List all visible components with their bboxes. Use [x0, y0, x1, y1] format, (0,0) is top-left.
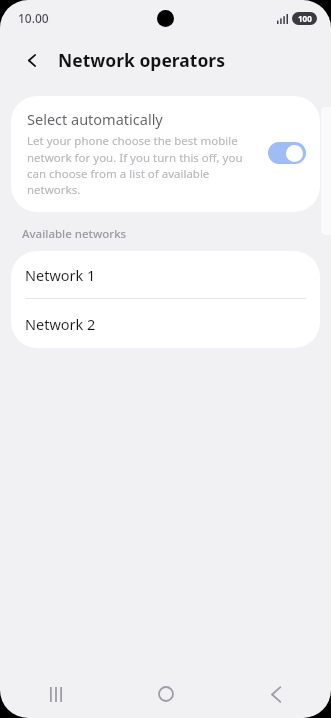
button[interactable]: Recent apps: [0, 670, 111, 718]
button[interactable]: Network 1: [11, 251, 320, 298]
button[interactable]: Back: [221, 670, 331, 718]
button[interactable]: Back: [18, 46, 46, 74]
staticText: Network 2: [25, 314, 96, 334]
staticText: 100: [298, 13, 312, 24]
staticText: Select automatically: [27, 109, 163, 129]
button[interactable]: Home: [111, 670, 221, 718]
button[interactable]: Network 2: [11, 299, 320, 348]
button[interactable]: Select automatically toggle: [268, 142, 306, 164]
staticText: Network operators: [58, 48, 225, 72]
staticText: Let your phone choose the best mobile ne…: [27, 133, 258, 197]
button[interactable]: Select automatically: [11, 96, 320, 212]
staticText: 10.00: [18, 10, 49, 26]
staticText: Available networks: [22, 226, 127, 242]
staticText: Network 1: [25, 265, 96, 285]
